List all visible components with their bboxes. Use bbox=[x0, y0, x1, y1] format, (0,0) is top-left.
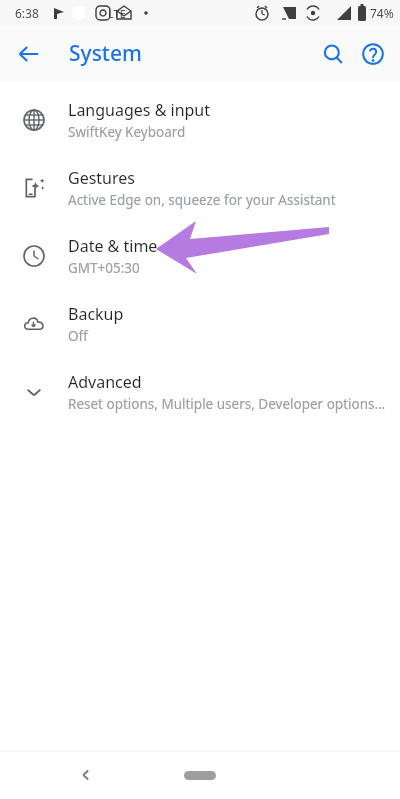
staticText: Reset options, Multiple users, Developer… bbox=[68, 395, 388, 413]
button[interactable]: Home bbox=[180, 765, 220, 785]
staticText: 74% bbox=[370, 5, 394, 21]
staticText: Languages & input bbox=[68, 99, 211, 121]
button[interactable]: Gestures bbox=[0, 145, 400, 213]
button[interactable]: Advanced bbox=[0, 349, 400, 417]
staticText: Advanced bbox=[68, 371, 142, 393]
staticText: Active Edge on, squeeze for your Assista… bbox=[68, 191, 336, 209]
button[interactable]: Back bbox=[9, 34, 49, 74]
staticText: Gestures bbox=[68, 167, 135, 189]
staticText: LTE bbox=[108, 6, 126, 21]
staticText: System bbox=[69, 39, 142, 68]
staticText: SwiftKey Keyboard bbox=[68, 123, 186, 141]
staticText: Backup bbox=[68, 303, 124, 325]
staticText: GMT+05:30 bbox=[68, 259, 140, 277]
button[interactable]: Search bbox=[313, 34, 353, 74]
button[interactable]: Backup bbox=[0, 281, 400, 349]
staticText: Date & time bbox=[68, 235, 158, 257]
button[interactable]: Help bbox=[353, 34, 393, 74]
button[interactable]: Date & time bbox=[0, 213, 400, 281]
button[interactable]: Languages & input bbox=[0, 81, 400, 145]
staticText: Off bbox=[68, 327, 88, 345]
button[interactable]: Back bbox=[68, 757, 104, 793]
staticText: 6:38 bbox=[15, 5, 39, 21]
